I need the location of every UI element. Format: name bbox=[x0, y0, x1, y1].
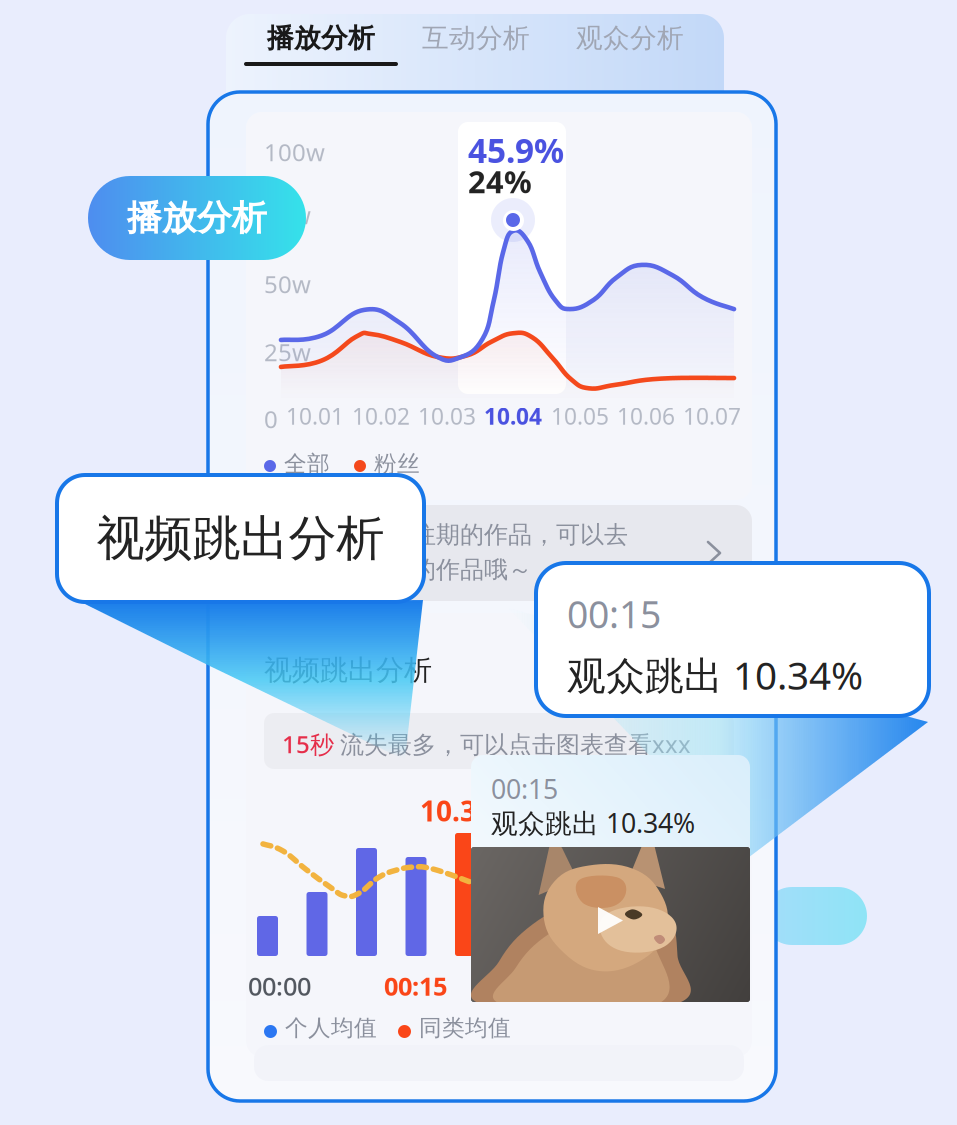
staticText: 25w bbox=[264, 336, 311, 368]
staticText: 10.01 bbox=[286, 401, 344, 431]
staticText: 10.04 bbox=[484, 401, 542, 431]
staticText: 完播率低于你往期的作品，可以去 bbox=[268, 520, 628, 549]
staticText: 00:15 bbox=[384, 969, 447, 1003]
staticText: 10.03 bbox=[418, 401, 476, 431]
staticText: 视频跳出分析 bbox=[96, 509, 384, 568]
staticText: 粉丝 bbox=[374, 450, 420, 478]
staticText: 同类均值 bbox=[419, 1014, 511, 1042]
staticText: 0 bbox=[264, 403, 278, 435]
staticText: 75w bbox=[264, 199, 311, 231]
staticText: 100w bbox=[264, 136, 325, 168]
staticText: 00:15 bbox=[567, 589, 661, 639]
staticText: 播放分析 bbox=[267, 22, 375, 54]
staticText: 10.34% bbox=[420, 792, 517, 829]
button[interactable]: 完播率低于你往期的作品，可以去 bbox=[246, 505, 752, 601]
staticText: 视频跳出分析 bbox=[264, 653, 432, 687]
staticText: 观众跳出 10.34% bbox=[491, 805, 695, 840]
staticText: 播放分析 bbox=[127, 197, 267, 239]
staticText: 15秒 bbox=[282, 728, 334, 760]
staticText: 00:15 bbox=[491, 771, 558, 806]
staticText: 10.02 bbox=[352, 401, 410, 431]
staticText: 24% bbox=[468, 161, 532, 202]
staticText: 流失最多，可以点击图表查看xxx bbox=[340, 728, 691, 760]
staticText: 10.06 bbox=[617, 401, 675, 431]
staticText: 10.05 bbox=[551, 401, 609, 431]
staticText: 观众分析 bbox=[576, 22, 684, 54]
staticText: 00:00 bbox=[248, 969, 311, 1003]
staticText: 观众跳出 10.34% bbox=[567, 649, 863, 700]
staticText: 个人均值 bbox=[285, 1014, 377, 1042]
staticText: 10.07 bbox=[683, 401, 741, 431]
staticText: 看看高完播率的作品哦～ bbox=[268, 555, 532, 584]
staticText: 50w bbox=[264, 268, 311, 300]
staticText: 全部 bbox=[284, 450, 330, 478]
staticText: 45.9% bbox=[468, 128, 564, 172]
staticText: 互动分析 bbox=[422, 22, 530, 54]
